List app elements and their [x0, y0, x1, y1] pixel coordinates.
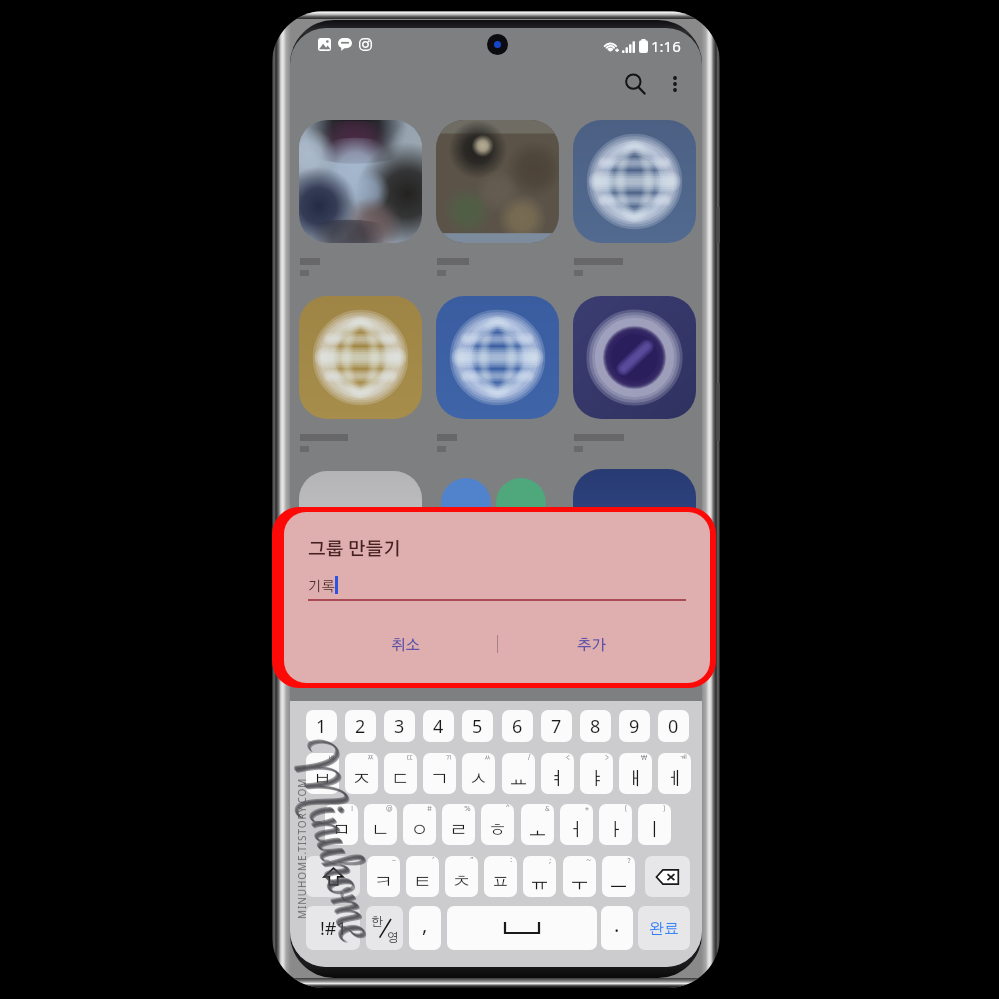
- button[interactable]: %: [442, 804, 475, 845]
- button[interactable]: 완료: [638, 906, 690, 950]
- staticText: ㅋ: [374, 870, 393, 894]
- button[interactable]: ~: [563, 856, 596, 897]
- button[interactable]: 2: [345, 710, 376, 742]
- staticText: 8: [590, 714, 601, 739]
- button[interactable]: ㅉ: [345, 753, 378, 794]
- button[interactable]: 6: [502, 710, 533, 742]
- staticText: ㅐ: [626, 767, 645, 791]
- button[interactable]: (: [599, 804, 632, 845]
- button[interactable]: #: [403, 804, 436, 845]
- button[interactable]: More options: [655, 64, 695, 104]
- button[interactable]: !: [325, 804, 358, 845]
- staticText: ": [470, 857, 474, 864]
- staticText: ㅛ: [509, 767, 528, 791]
- button[interactable]: >: [580, 753, 613, 794]
- staticText: !#1: [320, 916, 347, 941]
- button[interactable]: .: [601, 906, 633, 950]
- staticText: 0: [668, 714, 679, 739]
- staticText: ㅆ: [484, 754, 491, 761]
- button[interactable]: ;: [523, 856, 556, 897]
- button[interactable]: ㅃ: [306, 753, 339, 794]
- staticText: ㅓ: [567, 818, 586, 842]
- button[interactable]: Search: [615, 64, 655, 104]
- staticText: ㅍ: [491, 870, 510, 894]
- button[interactable]: 추가: [546, 625, 638, 665]
- staticText: @: [386, 805, 393, 812]
- button[interactable]: 취소: [360, 625, 452, 665]
- staticText: -: [392, 857, 396, 864]
- staticText: ': [432, 857, 435, 864]
- staticText: <: [566, 754, 570, 761]
- staticText: 영: [387, 929, 399, 944]
- staticText: Minuhome: [290, 732, 395, 946]
- button[interactable]: ㅆ: [462, 753, 495, 794]
- staticText: 추가: [577, 638, 607, 653]
- button[interactable]: ': [406, 856, 439, 897]
- button[interactable]: ): [638, 804, 671, 845]
- staticText: /: [528, 754, 531, 761]
- button[interactable]: *: [560, 804, 593, 845]
- staticText: MINUHOME.TISTORY.COM: [295, 779, 309, 919]
- button[interactable]: :: [484, 856, 517, 897]
- button[interactable]: Space: [447, 906, 597, 950]
- staticText: 기록: [308, 580, 335, 594]
- button[interactable]: ₩: [619, 753, 652, 794]
- button[interactable]: 3: [384, 710, 415, 742]
- staticText: ㅑ: [587, 767, 606, 791]
- button[interactable]: Language: [366, 906, 403, 950]
- staticText: #: [427, 805, 432, 812]
- button[interactable]: ?: [602, 856, 635, 897]
- button[interactable]: 8: [580, 710, 611, 742]
- staticText: ᆌ: [680, 754, 687, 761]
- button[interactable]: ,: [409, 906, 441, 950]
- staticText: %: [464, 805, 471, 812]
- staticText: *: [585, 805, 589, 812]
- staticText: !: [351, 805, 354, 812]
- staticText: 6: [512, 714, 523, 739]
- staticText: 1: [316, 714, 327, 739]
- button[interactable]: -: [367, 856, 400, 897]
- staticText: ,: [422, 911, 428, 938]
- button[interactable]: ^: [481, 804, 514, 845]
- button[interactable]: 4: [423, 710, 454, 742]
- staticText: ㄹ: [449, 818, 468, 842]
- staticText: ;: [549, 857, 552, 864]
- button[interactable]: 9: [619, 710, 650, 742]
- staticText: ㄴ: [371, 818, 390, 842]
- button[interactable]: <: [541, 753, 574, 794]
- button[interactable]: 0: [658, 710, 689, 742]
- staticText: ㅏ: [606, 818, 625, 842]
- button[interactable]: Symbols: [306, 906, 360, 950]
- staticText: 5: [472, 714, 483, 739]
- staticText: 9: [629, 714, 640, 739]
- button[interactable]: Shift: [306, 856, 360, 897]
- staticText: ): [663, 805, 667, 812]
- staticText: 3: [394, 714, 405, 739]
- staticText: ㅁ: [332, 818, 351, 842]
- button[interactable]: 1: [306, 710, 337, 742]
- staticText: (: [624, 805, 628, 812]
- button[interactable]: ㄸ: [384, 753, 417, 794]
- staticText: 한: [371, 913, 383, 928]
- staticText: ㅠ: [530, 870, 549, 894]
- staticText: ~: [586, 857, 592, 864]
- button[interactable]: &: [521, 804, 554, 845]
- staticText: ㅂ: [313, 767, 332, 791]
- staticText: ㅇ: [410, 818, 429, 842]
- staticText: ^: [506, 805, 510, 812]
- button[interactable]: @: [364, 804, 397, 845]
- button[interactable]: 5: [462, 710, 493, 742]
- staticText: ₩: [641, 754, 648, 761]
- staticText: ㄲ: [445, 754, 452, 761]
- button[interactable]: ㄲ: [423, 753, 456, 794]
- staticText: ㄷ: [391, 767, 410, 791]
- button[interactable]: /: [502, 753, 535, 794]
- staticText: >: [605, 754, 609, 761]
- button[interactable]: ᆌ: [658, 753, 691, 794]
- staticText: ㅅ: [469, 767, 488, 791]
- button[interactable]: 7: [541, 710, 572, 742]
- staticText: 취소: [391, 638, 421, 653]
- button[interactable]: ": [445, 856, 478, 897]
- button[interactable]: Backspace: [645, 856, 690, 897]
- staticText: ㅔ: [665, 767, 684, 791]
